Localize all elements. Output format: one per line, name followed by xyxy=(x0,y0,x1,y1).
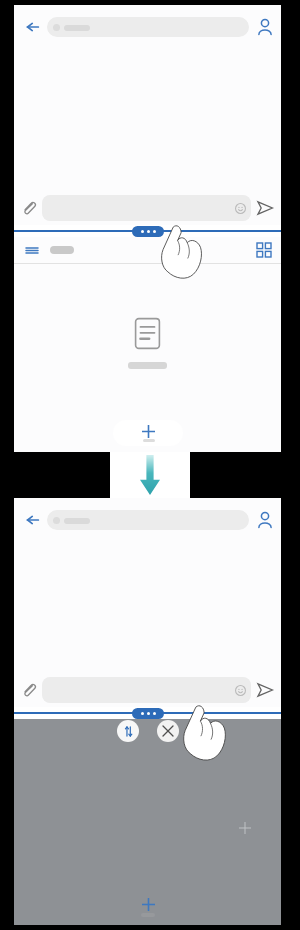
button[interactable]: Swap apps xyxy=(117,720,139,742)
button[interactable] xyxy=(47,510,249,530)
button[interactable]: New note xyxy=(113,420,183,446)
button[interactable]: Attach xyxy=(22,683,36,697)
button[interactable]: Back xyxy=(21,16,43,38)
button[interactable]: Resize split xyxy=(132,708,164,719)
button[interactable]: Resize split xyxy=(132,226,164,237)
button[interactable] xyxy=(47,17,249,37)
button[interactable]: Contact xyxy=(256,18,274,36)
button[interactable]: Send xyxy=(257,200,273,216)
button[interactable]: Menu xyxy=(24,242,40,258)
button[interactable]: Contact xyxy=(256,511,274,529)
button[interactable]: Grid view xyxy=(257,243,271,257)
button[interactable]: Back xyxy=(21,509,43,531)
button[interactable]: Close split screen xyxy=(157,720,179,742)
button[interactable]: Attach xyxy=(22,201,36,215)
button[interactable]: Send xyxy=(257,682,273,698)
button[interactable] xyxy=(42,195,251,221)
button[interactable]: New note xyxy=(113,893,183,919)
button[interactable] xyxy=(42,677,251,703)
